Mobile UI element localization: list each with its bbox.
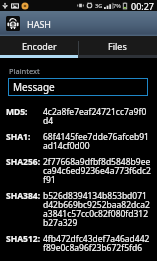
staticText: HASH (27, 18, 52, 30)
staticText: Plaintext (9, 66, 40, 76)
staticText: 4c2a8fe7eaf24721cc7a9f0d4 (43, 106, 151, 126)
staticText: SHA512: (6, 233, 43, 245)
staticText: Message (13, 80, 55, 94)
staticText: 2f77668a9dfbf8d5848b9eeca94c6ed9236e4a77… (43, 156, 151, 185)
staticText: 7% (113, 2, 121, 9)
staticText: Encoder (22, 40, 57, 52)
button[interactable]: Encoder (0, 36, 78, 58)
staticText: 3G (95, 2, 103, 9)
staticText: SHA384: (6, 190, 43, 202)
staticText: SHA256: (6, 156, 43, 168)
staticText: Files (108, 40, 127, 52)
staticText: MD5: (6, 106, 43, 118)
staticText: 4fb472dfc43def7a46ad442f89e0c8a96f23b672… (43, 233, 151, 253)
staticText: SHA1: (6, 131, 43, 143)
staticText: b526d8394134b853bd071d42b669bc9252baa82d… (43, 190, 151, 228)
staticText: 68f4145fee7dde76afceb91ad14cf0d00 (43, 131, 151, 151)
other: App icon (6, 16, 20, 31)
staticText: 00:27 (131, 0, 155, 11)
button[interactable]: Files (78, 36, 157, 58)
